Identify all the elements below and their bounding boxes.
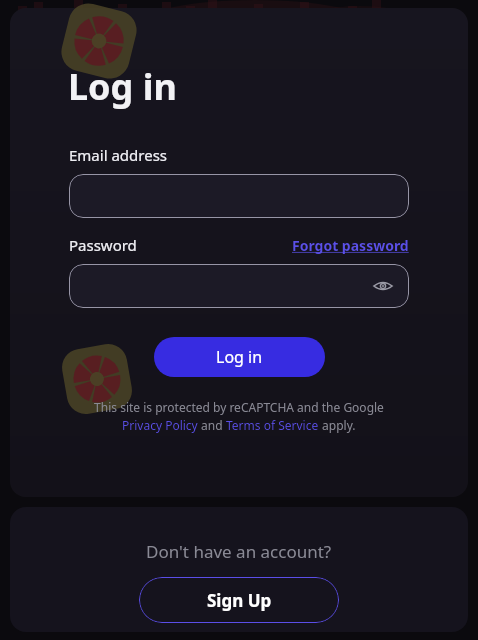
- staticText: Terms of Service: [226, 417, 319, 433]
- staticText: Log in: [68, 62, 177, 111]
- staticText: Password: [69, 235, 137, 255]
- staticText: Forgot password: [292, 236, 409, 255]
- staticText: This site is protected by reCAPTCHA and …: [94, 399, 384, 415]
- staticText: and: [198, 417, 226, 433]
- button[interactable]: Email address input: [69, 174, 409, 218]
- button[interactable]: Terms of Service: [226, 417, 319, 433]
- staticText: apply.: [319, 417, 356, 433]
- staticText: Log in: [216, 346, 263, 368]
- button[interactable]: Log in: [154, 337, 325, 377]
- staticText: Don't have an account?: [146, 540, 332, 563]
- button[interactable]: Privacy Policy: [122, 417, 198, 433]
- button[interactable]: Forgot password: [292, 236, 409, 255]
- button[interactable]: Show password: [369, 272, 397, 300]
- staticText: Email address: [69, 145, 168, 165]
- button[interactable]: Password input: [69, 264, 409, 308]
- staticText: Sign Up: [207, 589, 272, 612]
- button[interactable]: Sign Up: [139, 577, 339, 623]
- staticText: Privacy Policy: [122, 417, 198, 433]
